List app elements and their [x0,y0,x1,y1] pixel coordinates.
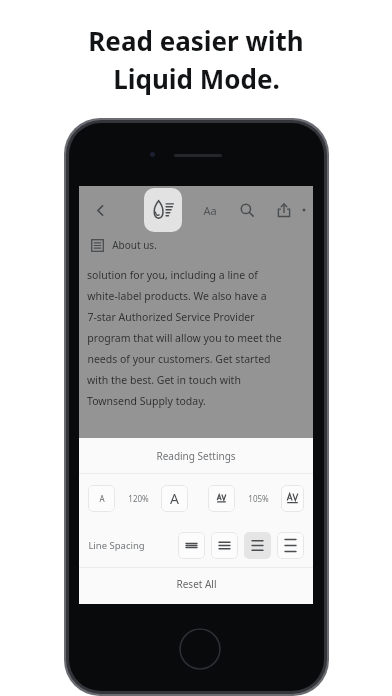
staticText: needs of your customers. Get started [87,352,271,366]
button[interactable]: Setting option [88,485,115,512]
staticText: white-label products. We also have a [87,289,267,303]
staticText: with the best. Get in touch with [87,373,241,387]
staticText: Reading Settings [156,449,236,463]
button[interactable]: Setting option [277,532,304,559]
button[interactable]: Text size [198,198,222,222]
staticText: program that will allow you to meet the [87,331,282,345]
button[interactable]: Setting option [178,532,205,559]
staticText: Liquid Mode. [113,61,280,96]
button[interactable]: Setting option [161,485,188,512]
button[interactable]: Share [272,198,296,222]
button[interactable]: Liquid Mode [144,188,182,232]
button[interactable]: Setting option [211,532,238,559]
staticText: 105% [248,493,269,504]
button[interactable]: Setting option [281,485,304,512]
staticText: Read easier with [88,23,304,58]
staticText: solution for you, including a line of [87,268,258,282]
button[interactable]: Search [235,198,259,222]
staticText: A [99,493,105,504]
button[interactable]: Back [88,198,112,222]
button[interactable]: Home [179,628,221,670]
button[interactable]: Setting option [244,532,271,559]
button[interactable]: About us. [91,234,313,256]
staticText: Line Spacing [88,539,145,552]
staticText: Aa [203,203,217,218]
staticText: Townsend Supply today. [87,394,206,408]
staticText: 7-star Authorized Service Provider [87,310,255,324]
staticText: 120% [128,493,149,504]
button[interactable]: Setting option [208,485,235,512]
staticText: About us. [112,238,157,252]
staticText: A [170,489,179,508]
button[interactable]: Reset All [79,568,313,599]
staticText: Reset All [176,577,217,591]
